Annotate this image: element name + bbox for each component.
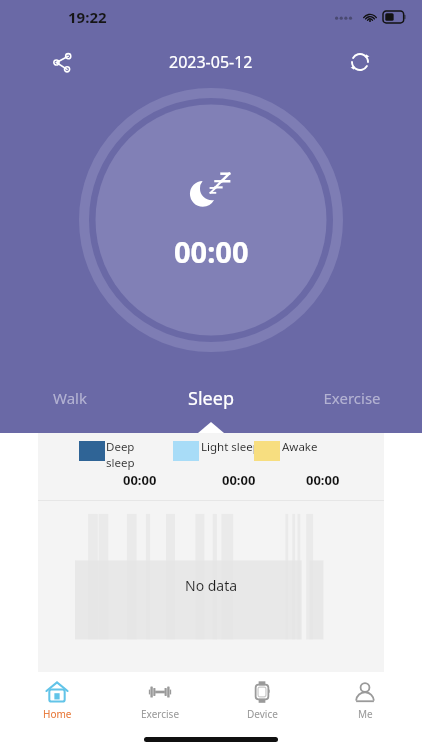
button[interactable]: Refresh (340, 42, 380, 82)
staticText: 19:22 (68, 7, 107, 27)
staticText: 00:00 (123, 471, 157, 489)
button[interactable]: Walk (0, 376, 140, 420)
button[interactable]: Me (319, 672, 411, 728)
staticText: Light sleep (201, 439, 260, 455)
button[interactable]: Exercise (281, 376, 422, 420)
staticText: Home (43, 707, 72, 721)
staticText: 2023-05-12 (169, 51, 253, 73)
button[interactable]: Device (216, 672, 308, 728)
button[interactable]: Sleep (140, 376, 281, 420)
staticText: 00:00 (222, 471, 256, 489)
button[interactable]: 00:00 (77, 86, 345, 354)
button[interactable]: Share (42, 42, 82, 82)
button[interactable]: Home (11, 672, 103, 728)
staticText: sleep (106, 455, 135, 471)
staticText: 00:00 (174, 232, 249, 271)
staticText: No data (185, 576, 238, 595)
button[interactable]: Exercise (114, 672, 206, 728)
staticText: Deep (106, 439, 135, 455)
staticText: 00:00 (306, 471, 340, 489)
staticText: Exercise (141, 707, 180, 721)
staticText: Awake (282, 439, 318, 455)
staticText: Walk (53, 388, 87, 408)
staticText: Sleep (188, 386, 234, 411)
staticText: Me (358, 707, 373, 721)
staticText: Device (247, 707, 278, 721)
staticText: Exercise (323, 388, 381, 408)
